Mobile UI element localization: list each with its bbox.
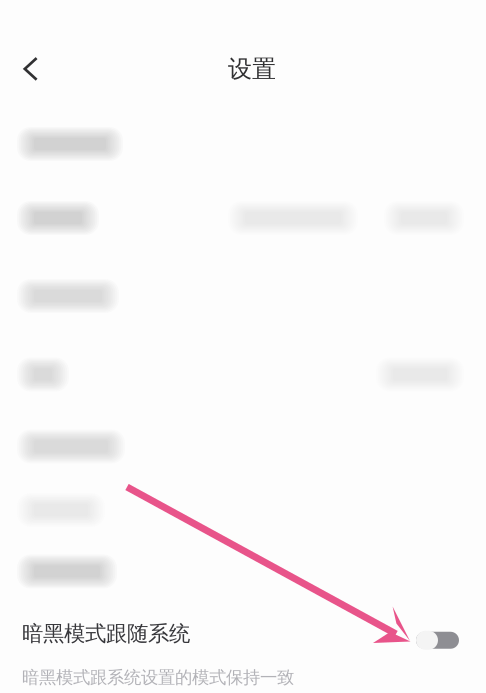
button[interactable] — [0, 179, 486, 257]
button[interactable] — [0, 541, 486, 602]
staticText: 设置 — [228, 54, 276, 84]
button[interactable]: 返回 — [7, 43, 55, 95]
button[interactable] — [0, 335, 486, 414]
button[interactable] — [0, 109, 486, 179]
button[interactable] — [0, 257, 486, 335]
button[interactable] — [0, 414, 486, 479]
button[interactable] — [0, 479, 486, 541]
staticText: 暗黑模式跟随系统 — [22, 620, 190, 647]
staticText: 暗黑模式跟系统设置的模式保持一致 — [22, 667, 294, 688]
button[interactable]: 暗黑模式跟随系统 — [0, 620, 486, 688]
